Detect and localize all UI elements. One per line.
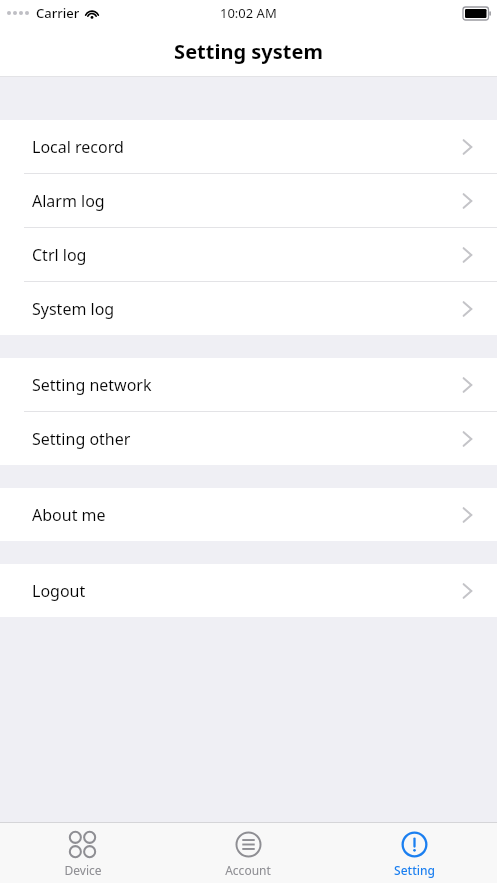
button[interactable]: Setting other xyxy=(0,412,497,465)
button[interactable]: Device xyxy=(0,823,165,878)
button[interactable]: Account xyxy=(165,823,331,878)
button[interactable]: Alarm log xyxy=(0,174,497,227)
button[interactable]: Local record xyxy=(0,120,497,173)
staticText: Device xyxy=(64,862,102,878)
staticText: Setting system xyxy=(174,38,323,65)
staticText: Setting network xyxy=(32,374,152,396)
staticText: Setting xyxy=(394,862,435,878)
staticText: System log xyxy=(32,298,115,320)
staticText: 10:02 AM xyxy=(220,4,277,22)
staticText: Alarm log xyxy=(32,190,105,212)
button[interactable]: Setting xyxy=(331,823,497,878)
other: Account xyxy=(235,831,262,858)
button[interactable]: Logout xyxy=(0,564,497,617)
button[interactable]: System log xyxy=(0,282,497,335)
button[interactable]: Setting network xyxy=(0,358,497,411)
staticText: Carrier xyxy=(36,4,80,22)
staticText: Local record xyxy=(32,136,124,158)
button[interactable]: About me xyxy=(0,488,497,541)
button[interactable]: Ctrl log xyxy=(0,228,497,281)
staticText: Setting other xyxy=(32,428,131,450)
staticText: About me xyxy=(32,504,106,526)
staticText: Account xyxy=(225,862,271,878)
staticText: Logout xyxy=(32,580,86,602)
other: Setting xyxy=(401,831,428,858)
staticText: Ctrl log xyxy=(32,244,87,266)
other: Device xyxy=(69,831,96,858)
